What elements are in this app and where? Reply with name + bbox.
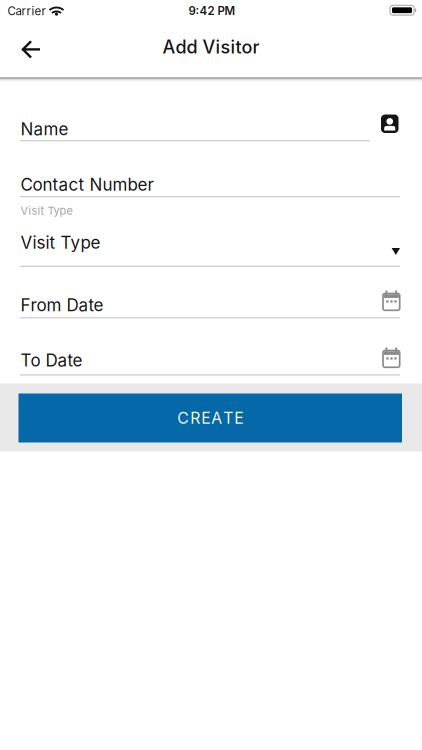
button[interactable]: C R E A T E [18, 393, 402, 442]
button[interactable]: From Date [20, 290, 422, 322]
staticText: 9:42 PM [188, 4, 235, 18]
staticText: From Date [20, 295, 103, 315]
button[interactable]: Visit Type [20, 220, 422, 267]
staticText: Visit Type [20, 232, 100, 253]
staticText: Visit Type [20, 204, 72, 217]
staticText: C R E A T E [177, 408, 243, 427]
staticText: Carrier [7, 4, 45, 18]
button[interactable]: Back [0, 25, 53, 74]
staticText: Add Visitor [162, 36, 259, 58]
staticText: Name [20, 119, 68, 139]
staticText: Contact Number [20, 174, 153, 195]
staticText: To Date [20, 350, 82, 371]
button[interactable]: Pick contact [377, 110, 402, 137]
button[interactable]: To Date [20, 347, 422, 379]
